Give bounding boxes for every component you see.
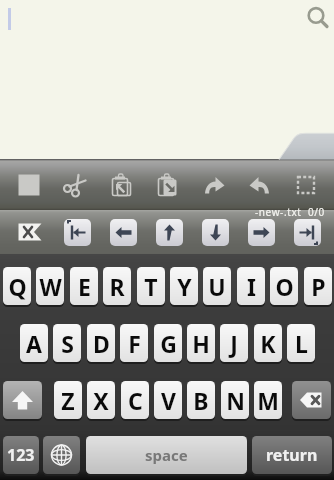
- button[interactable]: F: [120, 324, 148, 362]
- staticText: F: [128, 328, 141, 359]
- button[interactable]: M: [254, 381, 282, 419]
- button[interactable]: J: [220, 324, 248, 362]
- button[interactable]: Right: [238, 210, 284, 254]
- staticText: D: [93, 328, 110, 359]
- staticText: W: [39, 271, 62, 302]
- button[interactable]: N: [221, 381, 249, 419]
- button[interactable]: Close: [7, 210, 53, 254]
- button[interactable]: Undo: [237, 159, 283, 210]
- button[interactable]: A: [20, 324, 48, 362]
- staticText: K: [260, 328, 276, 359]
- staticText: return: [266, 444, 318, 466]
- button[interactable]: B: [187, 381, 215, 419]
- staticText: R: [109, 271, 125, 302]
- button[interactable]: R: [103, 267, 131, 305]
- button[interactable]: Redo: [191, 159, 237, 210]
- staticText: I: [247, 271, 256, 302]
- button[interactable]: E: [70, 267, 98, 305]
- staticText: G: [160, 328, 177, 359]
- button[interactable]: Change keyboard: [43, 436, 80, 474]
- staticText: L: [295, 328, 308, 359]
- button[interactable]: D: [87, 324, 115, 362]
- staticText: Z: [61, 385, 75, 416]
- button[interactable]: Search: [300, 2, 334, 36]
- button[interactable]: Backspace: [292, 381, 331, 419]
- button[interactable]: space: [86, 436, 247, 474]
- button[interactable]: G: [154, 324, 182, 362]
- button[interactable]: Y: [170, 267, 198, 305]
- button[interactable]: Z: [54, 381, 82, 419]
- button[interactable]: return: [252, 436, 332, 474]
- button[interactable]: U: [203, 267, 231, 305]
- button[interactable]: Paste: [144, 159, 190, 210]
- button[interactable]: X: [87, 381, 115, 419]
- staticText: C: [128, 385, 143, 416]
- button[interactable]: W: [36, 267, 64, 305]
- button[interactable]: C: [121, 381, 149, 419]
- button[interactable]: S: [53, 324, 81, 362]
- staticText: B: [193, 385, 209, 416]
- staticText: H: [192, 328, 210, 359]
- button[interactable]: Home: [54, 210, 100, 254]
- button[interactable]: Q: [3, 267, 31, 305]
- button[interactable]: O: [270, 267, 298, 305]
- staticText: P: [311, 271, 326, 302]
- button[interactable]: End: [284, 210, 330, 254]
- staticText: U: [208, 271, 226, 302]
- staticText: -new-.txt 0/0: [255, 205, 325, 219]
- button[interactable]: I: [237, 267, 265, 305]
- staticText: A: [26, 328, 42, 359]
- button[interactable]: H: [187, 324, 215, 362]
- button[interactable]: T: [137, 267, 165, 305]
- staticText: T: [144, 271, 158, 302]
- staticText: S: [61, 328, 74, 359]
- button[interactable]: 123: [3, 436, 39, 474]
- staticText: E: [78, 271, 91, 302]
- button[interactable]: Shift: [3, 381, 42, 419]
- staticText: V: [161, 385, 176, 416]
- staticText: Q: [8, 271, 27, 302]
- button[interactable]: Select all: [6, 159, 52, 210]
- staticText: J: [230, 328, 238, 359]
- button[interactable]: Cut: [52, 159, 98, 210]
- button[interactable]: K: [254, 324, 282, 362]
- staticText: O: [275, 271, 294, 302]
- button[interactable]: Left: [100, 210, 146, 254]
- button[interactable]: Down: [192, 210, 238, 254]
- button[interactable]: Up: [146, 210, 192, 254]
- button[interactable]: V: [154, 381, 182, 419]
- staticText: 123: [7, 444, 35, 466]
- button[interactable]: Copy: [98, 159, 144, 210]
- button[interactable]: P: [304, 267, 332, 305]
- staticText: space: [145, 445, 188, 465]
- staticText: N: [226, 385, 245, 416]
- button[interactable]: L: [287, 324, 315, 362]
- staticText: M: [257, 385, 279, 416]
- button[interactable]: Select: [283, 159, 329, 210]
- staticText: X: [93, 385, 109, 416]
- staticText: Y: [177, 271, 192, 302]
